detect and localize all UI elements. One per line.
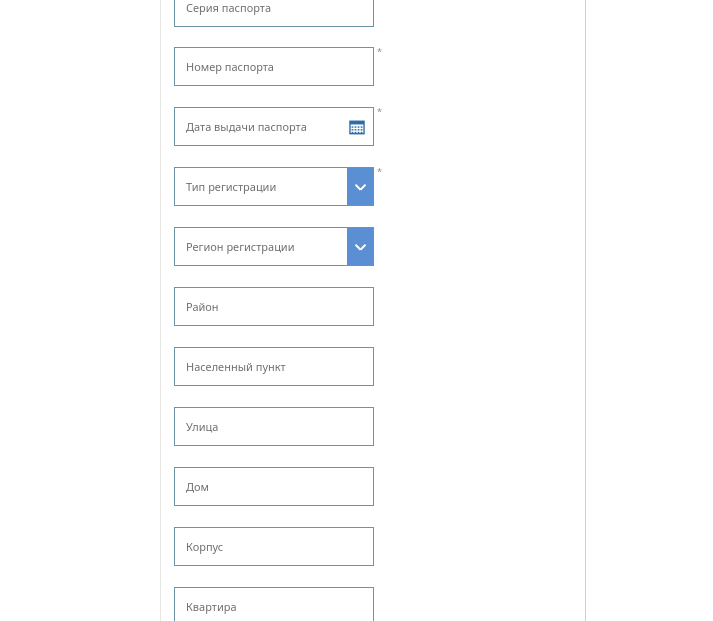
staticText: Улица xyxy=(186,419,219,434)
button[interactable]: Дом xyxy=(174,467,374,506)
staticText: Тип регистрации xyxy=(186,179,277,194)
button[interactable]: Район xyxy=(174,287,374,326)
staticText: Район xyxy=(186,299,219,314)
staticText: Номер паспорта xyxy=(186,59,274,74)
staticText: Серия паспорта xyxy=(186,0,272,15)
staticText: * xyxy=(377,45,382,57)
button[interactable]: Дата выдачи паспорта xyxy=(174,107,374,146)
staticText: Корпус xyxy=(186,539,224,554)
button[interactable]: Open Тип регистрации list xyxy=(347,168,374,205)
staticText: Дата выдачи паспорта xyxy=(186,119,307,134)
staticText: Квартира xyxy=(186,599,237,614)
staticText: * xyxy=(377,165,382,177)
button[interactable]: Улица xyxy=(174,407,374,446)
button[interactable]: Open Регион регистрации list xyxy=(347,228,374,265)
button[interactable]: Регион регистрации xyxy=(174,227,374,266)
button[interactable]: Номер паспорта xyxy=(174,47,374,86)
staticText: Регион регистрации xyxy=(186,239,295,254)
staticText: * xyxy=(377,105,382,117)
button[interactable]: Тип регистрации xyxy=(174,167,374,206)
button[interactable]: Pick date xyxy=(349,119,365,135)
button[interactable]: Населенный пункт xyxy=(174,347,374,386)
button[interactable]: Корпус xyxy=(174,527,374,566)
button[interactable]: Квартира xyxy=(174,587,374,621)
staticText: Населенный пункт xyxy=(186,359,286,374)
staticText: Дом xyxy=(186,479,210,494)
button[interactable]: Серия паспорта xyxy=(174,0,374,27)
